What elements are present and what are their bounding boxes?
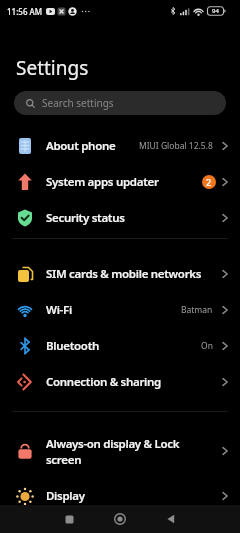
button[interactable] (151, 505, 191, 533)
staticText: 11:56 AM (7, 6, 43, 17)
staticText: On (201, 340, 213, 352)
staticText: MIUI Global 12.5.8 (139, 140, 213, 152)
button[interactable]: Security status (0, 200, 240, 236)
staticText: Batman (181, 304, 213, 316)
staticText: 2 (206, 176, 212, 188)
button[interactable]: System apps updater (0, 164, 240, 200)
staticText: Display (46, 488, 85, 504)
staticText: 94 (212, 7, 219, 15)
button[interactable]: Connection & sharing (0, 364, 240, 400)
button[interactable]: About phone (0, 128, 240, 164)
staticText: System apps updater (46, 174, 159, 190)
button[interactable]: Always-on display & Lock screen (0, 428, 240, 474)
button[interactable]: Wi-Fi (0, 292, 240, 328)
staticText: Settings (16, 55, 89, 81)
staticText: Connection & sharing (46, 374, 162, 390)
button[interactable]: SIM cards & mobile networks (0, 256, 240, 292)
staticText: Search settings (42, 96, 114, 110)
button[interactable]: Search settings (14, 91, 226, 115)
staticText: SIM cards & mobile networks (46, 266, 202, 282)
staticText: Security status (46, 210, 125, 226)
button[interactable] (49, 505, 89, 533)
button[interactable]: Bluetooth (0, 328, 240, 364)
staticText: About phone (46, 138, 116, 154)
button[interactable] (100, 505, 140, 533)
staticText: Always-on display & Lock screen (46, 436, 180, 467)
button[interactable]: Display (0, 478, 240, 514)
staticText: Wi-Fi (46, 302, 72, 318)
staticText: Bluetooth (46, 338, 100, 354)
